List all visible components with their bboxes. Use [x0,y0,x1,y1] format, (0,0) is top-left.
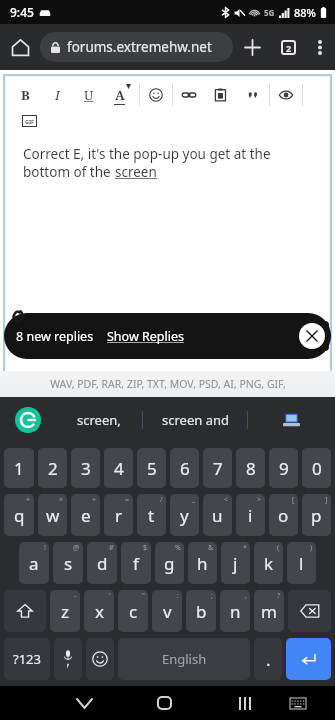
button[interactable]: 2 [38,448,67,488]
button[interactable]: b [186,590,216,632]
staticText: # [109,543,114,553]
button[interactable]: d [87,542,117,584]
button[interactable]: 6 [170,448,199,488]
button[interactable]: Emoji suggestion [248,397,335,443]
button[interactable]: g [155,542,184,584]
staticText: 4 [114,457,124,480]
button[interactable]: y [170,494,199,536]
staticText: / [160,495,163,505]
button[interactable]: 9 [269,448,298,488]
button[interactable]: Paste [205,80,237,110]
staticText: I [55,86,60,104]
staticText: U [84,86,94,104]
button[interactable]: 4 [104,448,133,488]
staticText: 8 [246,457,256,480]
staticText: d [97,552,108,575]
staticText: h [197,552,208,575]
button[interactable]: Show Replies [107,328,184,345]
button[interactable]: k [254,542,283,584]
button[interactable]: screen, [56,397,142,443]
button[interactable]: Voice input [54,638,82,680]
button[interactable]: h [188,542,217,584]
button[interactable]: 3 [71,448,100,488]
staticText: q [14,504,25,527]
staticText: v [163,600,172,623]
staticText: ?123 [13,650,41,668]
button[interactable]: Dismiss [299,323,325,349]
button[interactable]: A [105,80,139,110]
button[interactable]: ?123 [4,638,50,680]
button[interactable]: 0 [302,448,331,488]
staticText: ÷ [92,495,97,505]
button[interactable]: Quote [237,80,269,110]
button[interactable]: Preview [270,80,302,110]
button[interactable]: Switch keyboard [271,686,324,720]
button[interactable]: q [4,494,34,536]
button[interactable]: . [254,638,282,680]
button[interactable]: Grammarly [0,397,56,443]
staticText: = [125,495,130,505]
button[interactable]: I [41,80,73,110]
button[interactable]: c [118,590,148,632]
button[interactable]: o [269,494,298,536]
button[interactable]: j [221,542,250,584]
staticText: l [299,552,304,575]
button[interactable]: e [71,494,100,536]
button[interactable]: n [220,590,250,632]
button[interactable]: Scroll to top [295,321,329,351]
button[interactable]: New tab [233,28,271,66]
staticText: 9:45 [10,4,34,20]
button[interactable]: x [84,590,114,632]
staticText: m [261,600,277,623]
button[interactable]: Backspace [288,590,331,632]
button[interactable]: z [50,590,80,632]
button[interactable]: 8 new replies [4,313,331,359]
button[interactable]: 1 [4,448,34,488]
button[interactable]: More options [305,32,335,62]
staticText: ( [277,543,280,553]
button[interactable]: Insert link [173,80,205,110]
button[interactable]: 5 [137,448,166,488]
button[interactable]: Tabs [271,30,305,64]
button[interactable]: Enter [286,638,331,680]
button[interactable]: t [137,494,166,536]
button[interactable]: s [53,542,83,584]
button[interactable]: English [118,638,250,680]
staticText: w [46,504,60,527]
button[interactable]: w [38,494,67,536]
button[interactable]: Hide keyboard [58,686,111,720]
button[interactable]: a [19,542,49,584]
button[interactable]: B [9,80,41,110]
staticText: z [61,600,69,623]
button[interactable]: Emoji [140,80,172,110]
button[interactable]: p [302,494,331,536]
staticText: : [177,591,179,601]
button[interactable]: u [203,494,232,536]
staticText: screen and [162,411,229,429]
button[interactable]: Shift [4,590,46,632]
button[interactable]: Emoji [86,638,114,680]
button[interactable]: GIF [22,115,37,127]
staticText: r [115,504,123,527]
button[interactable]: screen and [143,397,247,443]
staticText: ] [325,495,328,505]
staticText: j [233,552,238,575]
staticText: @ [73,543,80,553]
staticText: % [175,543,181,553]
button[interactable]: m [254,590,284,632]
button[interactable]: U [73,80,105,110]
button[interactable]: f [121,542,151,584]
button[interactable]: r [104,494,133,536]
button[interactable]: i [236,494,265,536]
button[interactable]: forums.extremehw.net [40,32,233,62]
button[interactable]: Home [0,27,40,67]
button[interactable]: 8 [236,448,265,488]
staticText: English [162,650,207,668]
button[interactable]: Recent apps [218,686,271,720]
button[interactable]: 7 [203,448,232,488]
button[interactable]: Home [138,686,191,720]
button[interactable]: l [287,542,316,584]
staticText: forums.extremehw.net [67,38,212,56]
button[interactable]: v [152,590,182,632]
staticText: Show Replies [107,328,184,345]
